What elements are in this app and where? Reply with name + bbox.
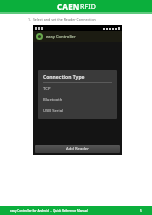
button[interactable]: TCP <box>43 86 112 92</box>
staticText: 5 <box>140 209 142 213</box>
staticText: 1. Select and set the Reader Connection <box>28 17 96 22</box>
staticText: Connection Type <box>43 74 85 81</box>
staticText: Bluetooth <box>43 97 63 103</box>
staticText: USB Serial <box>43 108 64 114</box>
staticText: easy Controller for Android - Quick Refe… <box>10 209 88 213</box>
staticText: Add Reader <box>66 146 89 152</box>
button[interactable]: USB Serial <box>43 108 112 114</box>
other: App icon <box>36 33 43 40</box>
button[interactable]: Add Reader <box>35 145 120 153</box>
staticText: TCP <box>43 86 51 92</box>
staticText: CAEN <box>57 1 80 12</box>
button[interactable]: App icon <box>33 31 122 42</box>
button[interactable]: Bluetooth <box>43 97 112 103</box>
staticText: easy Controller <box>46 34 76 40</box>
staticText: RFID <box>80 2 96 12</box>
